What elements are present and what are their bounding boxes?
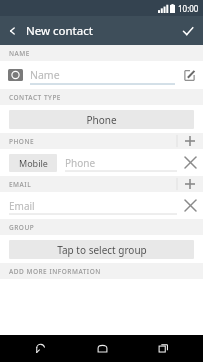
staticText: Tap to select group [57,243,147,257]
button[interactable]: Add [177,133,203,149]
button[interactable]: Save [173,16,203,45]
staticText: Mobile [19,157,48,169]
staticText: Phone [65,156,96,170]
button[interactable]: Name [30,61,175,89]
button[interactable]: Remove phone [177,149,203,176]
staticText: Phone [86,113,117,127]
staticText: CONTACT TYPE [9,93,61,102]
button[interactable]: Expand name fields [175,61,203,89]
button[interactable]: Add photo [8,69,23,81]
staticText: PHONE [9,137,35,146]
button[interactable]: Home [80,335,124,362]
button[interactable]: Mobile [9,154,57,172]
staticText: Name [30,68,60,82]
button[interactable]: Remove email [177,192,203,219]
button[interactable]: Phone [65,149,177,176]
button[interactable]: Add [177,176,203,192]
staticText: GROUP [9,223,35,232]
button[interactable]: Back [18,335,62,362]
staticText: NAME [9,49,30,58]
button[interactable]: Email [9,192,177,219]
button[interactable]: Back [0,16,26,45]
button[interactable]: Tap to select group [9,240,194,259]
staticText: Email [9,199,35,213]
staticText: EMAIL [9,180,32,189]
staticText: 10:00 [178,3,199,14]
button[interactable]: Phone [9,110,194,129]
staticText: ADD MORE INFORMATION [9,267,101,276]
staticText: New contact [26,23,93,39]
button[interactable]: Recent apps [141,335,185,362]
